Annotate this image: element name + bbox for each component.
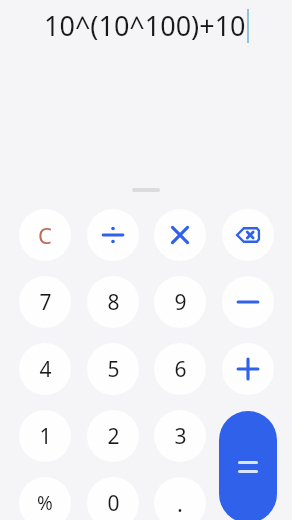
staticText: % — [37, 490, 53, 516]
button[interactable]: 6 — [154, 343, 206, 395]
staticText: 8 — [107, 288, 120, 317]
button[interactable]: Plus — [222, 343, 274, 395]
staticText: 9 — [174, 288, 187, 317]
button[interactable]: 8 — [87, 276, 139, 328]
staticText: 6 — [174, 355, 187, 384]
button[interactable]: . — [154, 477, 206, 520]
staticText: 3 — [174, 422, 187, 451]
staticText: 1 — [39, 422, 52, 451]
button[interactable]: Equals — [219, 411, 277, 520]
staticText: 7 — [39, 288, 52, 317]
button[interactable]: 1 — [19, 410, 71, 462]
button[interactable]: Backspace — [222, 209, 274, 261]
button[interactable]: 5 — [87, 343, 139, 395]
button[interactable]: 4 — [19, 343, 71, 395]
button[interactable]: 7 — [19, 276, 71, 328]
staticText: 5 — [107, 355, 120, 384]
button[interactable]: C — [19, 209, 71, 261]
staticText: C — [38, 220, 52, 250]
button[interactable]: % — [19, 477, 71, 520]
button[interactable]: 0 — [87, 477, 139, 520]
staticText: 10^(10^100)+10 — [44, 7, 246, 44]
staticText: 2 — [107, 422, 120, 451]
button[interactable]: Divide — [87, 209, 139, 261]
button[interactable]: 3 — [154, 410, 206, 462]
button[interactable]: Minus — [222, 276, 274, 328]
button[interactable]: Multiply — [154, 209, 206, 261]
button[interactable]: 2 — [87, 410, 139, 462]
staticText: . — [177, 488, 183, 518]
staticText: 0 — [107, 489, 120, 518]
button[interactable]: 9 — [154, 276, 206, 328]
staticText: 4 — [39, 355, 52, 384]
